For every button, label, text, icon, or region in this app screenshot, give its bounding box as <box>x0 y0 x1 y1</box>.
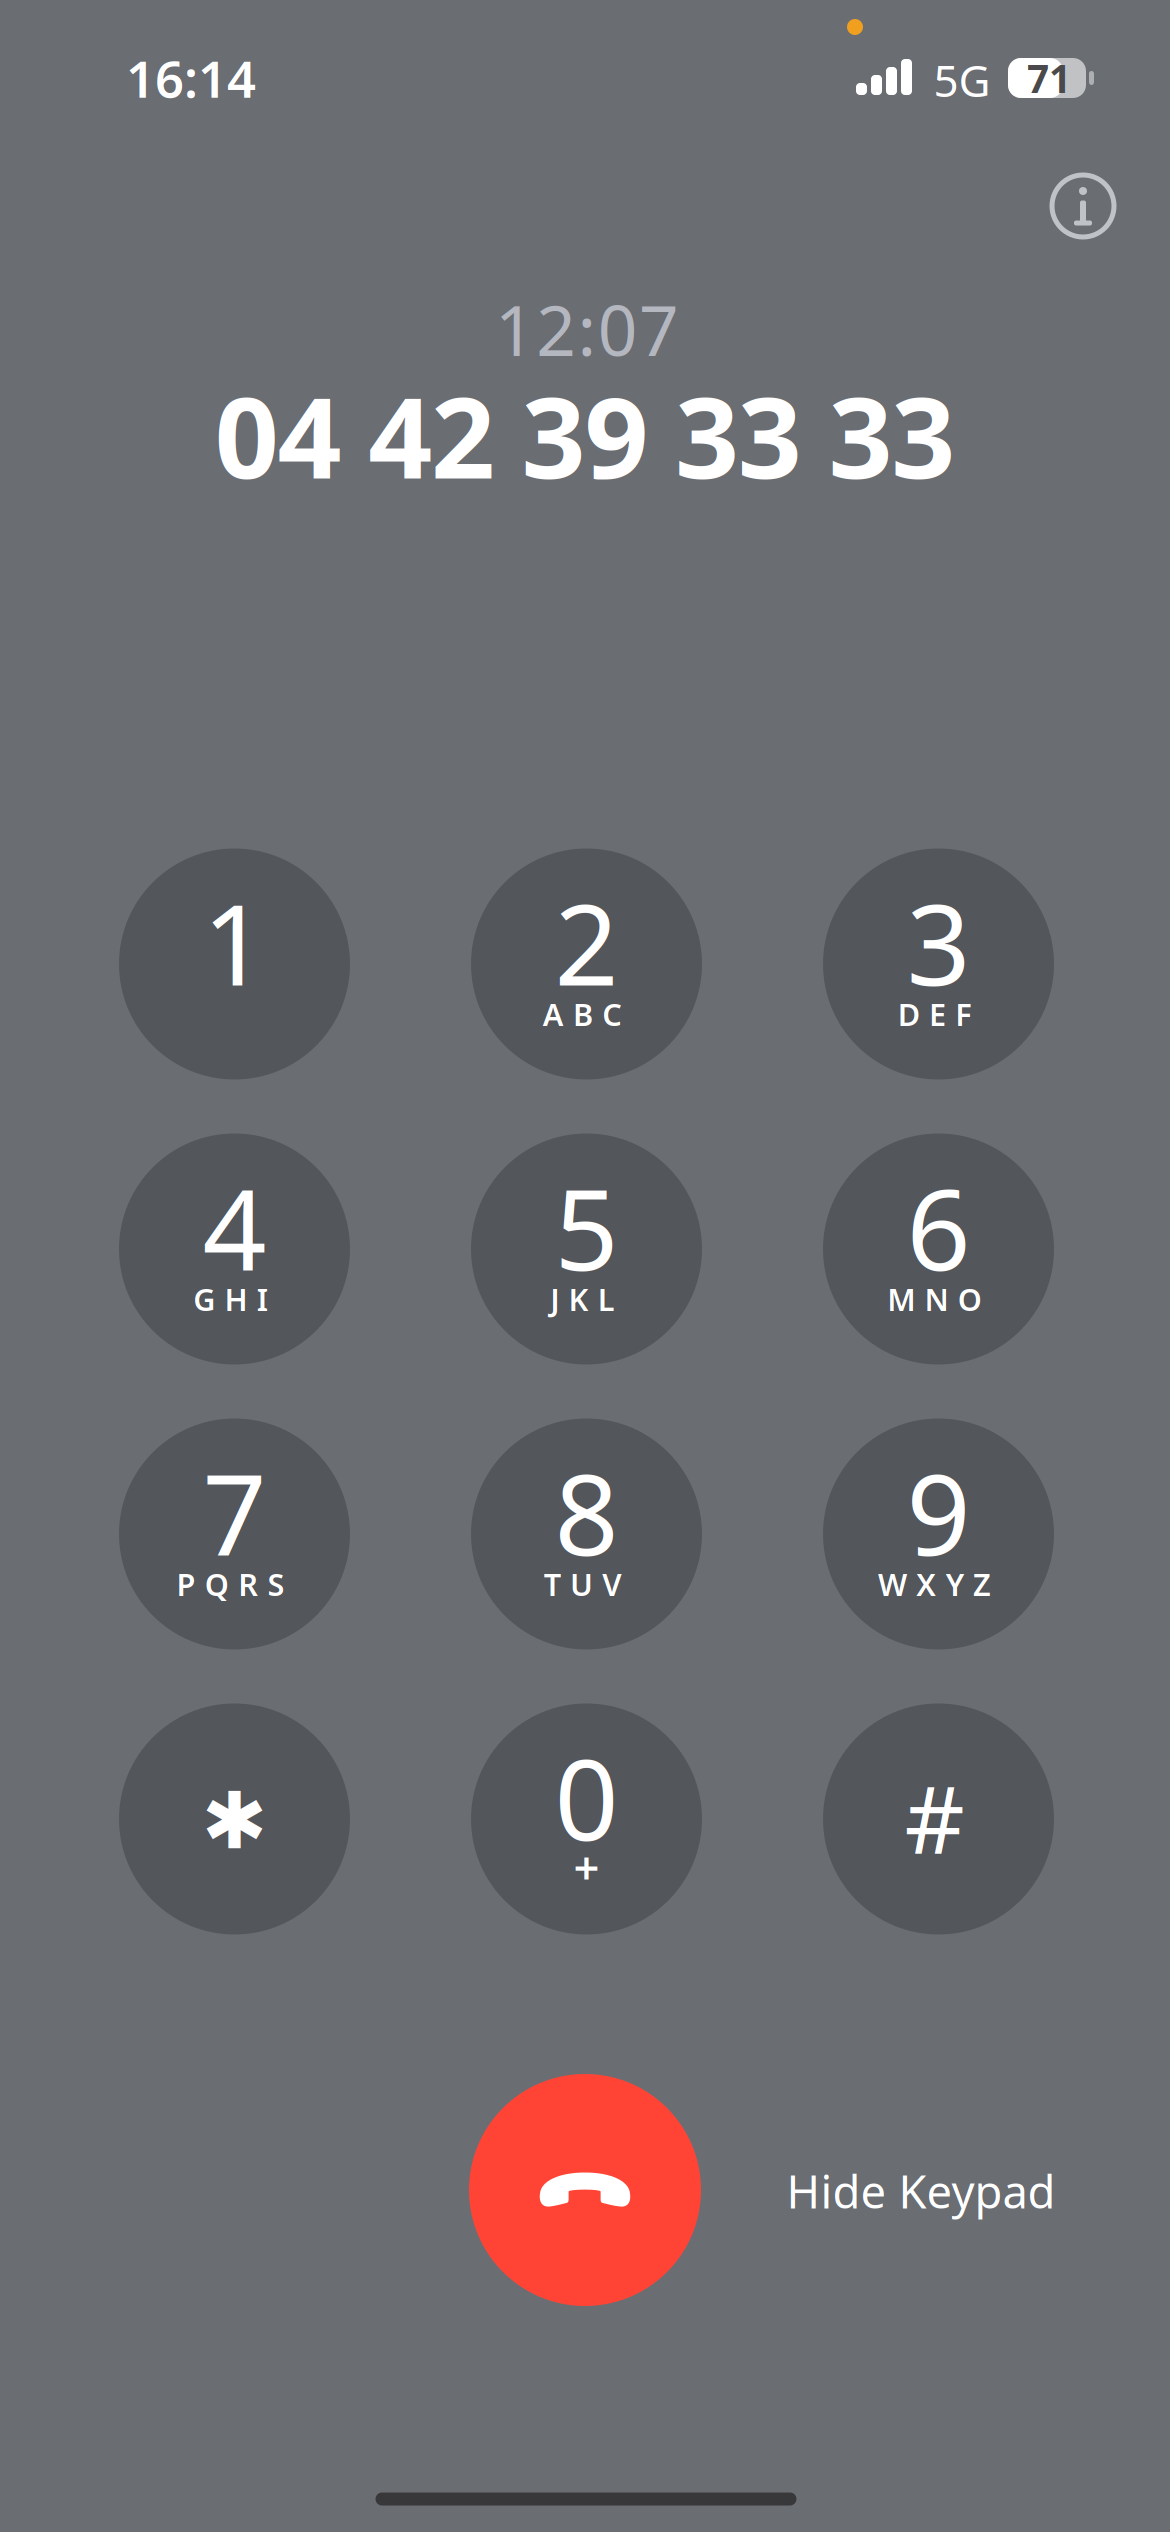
staticText: Hide Keypad <box>786 2161 1055 2221</box>
staticText: 9 <box>906 1438 970 1586</box>
button[interactable]: 0 <box>471 1703 702 1934</box>
staticText: GHI <box>193 1279 268 1319</box>
button[interactable]: 4 <box>119 1133 350 1364</box>
button[interactable]: 2 <box>471 848 702 1079</box>
staticText: 0 <box>554 1723 618 1871</box>
staticText: PQRS <box>177 1564 284 1604</box>
staticText: MNO <box>887 1279 982 1319</box>
staticText: ABC <box>543 994 622 1034</box>
staticText: 2 <box>554 868 618 1016</box>
staticText: 5 <box>554 1153 618 1301</box>
button[interactable]: 1 <box>119 848 350 1079</box>
staticText: 04 42 39 33 33 <box>215 361 955 509</box>
staticText: 3 <box>906 868 970 1016</box>
button[interactable]: 5 <box>471 1133 702 1364</box>
button[interactable]: 8 <box>471 1418 702 1649</box>
staticText: 71 <box>1027 52 1071 104</box>
button[interactable]: Hide Keypad <box>762 2143 1079 2239</box>
button[interactable]: End call <box>469 2074 701 2306</box>
staticText: 1 <box>202 868 266 1016</box>
staticText: 8 <box>554 1438 618 1586</box>
staticText: WXYZ <box>878 1564 991 1604</box>
staticText: ✱ <box>201 1776 267 1866</box>
staticText: 4 <box>202 1153 266 1301</box>
staticText: + <box>573 1837 599 1897</box>
staticText: 16:14 <box>126 44 256 112</box>
button[interactable]: Call details <box>1033 156 1133 256</box>
button[interactable]: 9 <box>823 1418 1054 1649</box>
button[interactable]: Pound <box>823 1703 1054 1934</box>
staticText: 7 <box>202 1438 266 1586</box>
staticText: DEF <box>898 994 971 1034</box>
button[interactable]: Star <box>119 1703 350 1934</box>
staticText: TUV <box>544 1564 621 1604</box>
button[interactable]: 3 <box>823 848 1054 1079</box>
button[interactable]: 7 <box>119 1418 350 1649</box>
staticText: 5G <box>933 51 990 109</box>
staticText: JKL <box>550 1279 615 1319</box>
staticText: # <box>904 1756 964 1880</box>
staticText: 12:07 <box>495 283 679 375</box>
button[interactable]: 6 <box>823 1133 1054 1364</box>
staticText: 6 <box>906 1153 970 1301</box>
